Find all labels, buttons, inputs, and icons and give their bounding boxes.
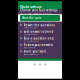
staticText: Review your answers bbox=[24, 43, 53, 47]
staticText: from the chosen topic bbox=[24, 27, 38, 29]
staticText: Quiz setup bbox=[20, 4, 42, 9]
button[interactable]: Facebook bbox=[33, 63, 36, 66]
staticText: Skip a question once bbox=[24, 37, 55, 40]
button[interactable]: Mail bbox=[44, 63, 47, 66]
staticText: at the end of the quiz bbox=[24, 47, 36, 49]
button[interactable]: Twitter bbox=[39, 63, 41, 66]
staticText: per round if you need bbox=[24, 40, 39, 42]
staticText: to keep things moving bbox=[24, 34, 38, 35]
button[interactable]: Start the quiz bbox=[20, 15, 60, 21]
staticText: with friends afterwards bbox=[24, 53, 39, 55]
staticText: Start the quiz bbox=[22, 16, 41, 20]
staticText: Choose your quiz settings bbox=[20, 8, 57, 12]
staticText: Each answer is timed bbox=[24, 30, 54, 33]
staticText: Share your score bbox=[24, 50, 47, 53]
staticText: then tap start to begin bbox=[20, 12, 52, 16]
staticText: Answer ten questions bbox=[24, 23, 55, 27]
